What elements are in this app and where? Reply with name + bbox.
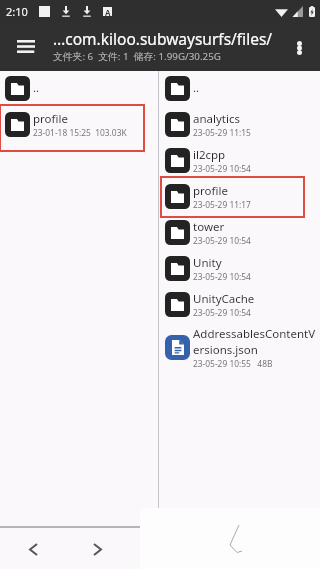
staticText: 2:10: [6, 4, 28, 19]
staticText: Unity: [193, 255, 222, 271]
button[interactable]: il2cpp: [159, 142, 320, 178]
staticText: analytics: [193, 111, 240, 127]
button[interactable]: Unity: [159, 250, 320, 286]
button[interactable]: Menu: [0, 22, 51, 71]
button[interactable]: profile: [0, 106, 158, 142]
button[interactable]: Back: [18, 534, 49, 565]
staticText: 23-01-18 15:25 103.03K: [33, 127, 127, 138]
staticText: 23-05-29 11:15: [193, 127, 251, 138]
staticText: …com.kiloo.subwaysurfs/files/: [53, 28, 273, 49]
staticText: 23-05-29 10:54: [193, 271, 251, 282]
staticText: ..: [33, 80, 40, 96]
staticText: A: [105, 7, 111, 16]
button[interactable]: Forward: [82, 534, 113, 565]
staticText: 文件夹: 6 文件: 1 储存: 1.99G/30.25G: [53, 50, 221, 63]
staticText: profile: [33, 111, 68, 127]
button[interactable]: profile: [159, 178, 320, 214]
staticText: 23-05-29 11:17: [193, 199, 251, 210]
staticText: 23-05-29 10:54: [193, 163, 251, 174]
button[interactable]: tower: [159, 214, 320, 250]
staticText: UnityCache: [193, 291, 255, 307]
staticText: 23-05-29 10:54: [193, 235, 251, 246]
staticText: il2cpp: [193, 147, 226, 163]
staticText: ..: [193, 80, 200, 96]
button[interactable]: analytics: [159, 106, 320, 142]
staticText: AddressablesContentVersions.json: [193, 326, 318, 358]
staticText: tower: [193, 219, 225, 235]
staticText: 23-05-29 10:55 48B: [193, 358, 273, 369]
button[interactable]: ..: [0, 70, 158, 106]
staticText: profile: [193, 183, 228, 199]
button[interactable]: ..: [159, 70, 320, 106]
button[interactable]: More options: [279, 22, 320, 71]
button[interactable]: AddressablesContentVersions.json: [159, 322, 320, 372]
button[interactable]: UnityCache: [159, 286, 320, 322]
staticText: 23-05-29 10:54: [193, 307, 251, 318]
